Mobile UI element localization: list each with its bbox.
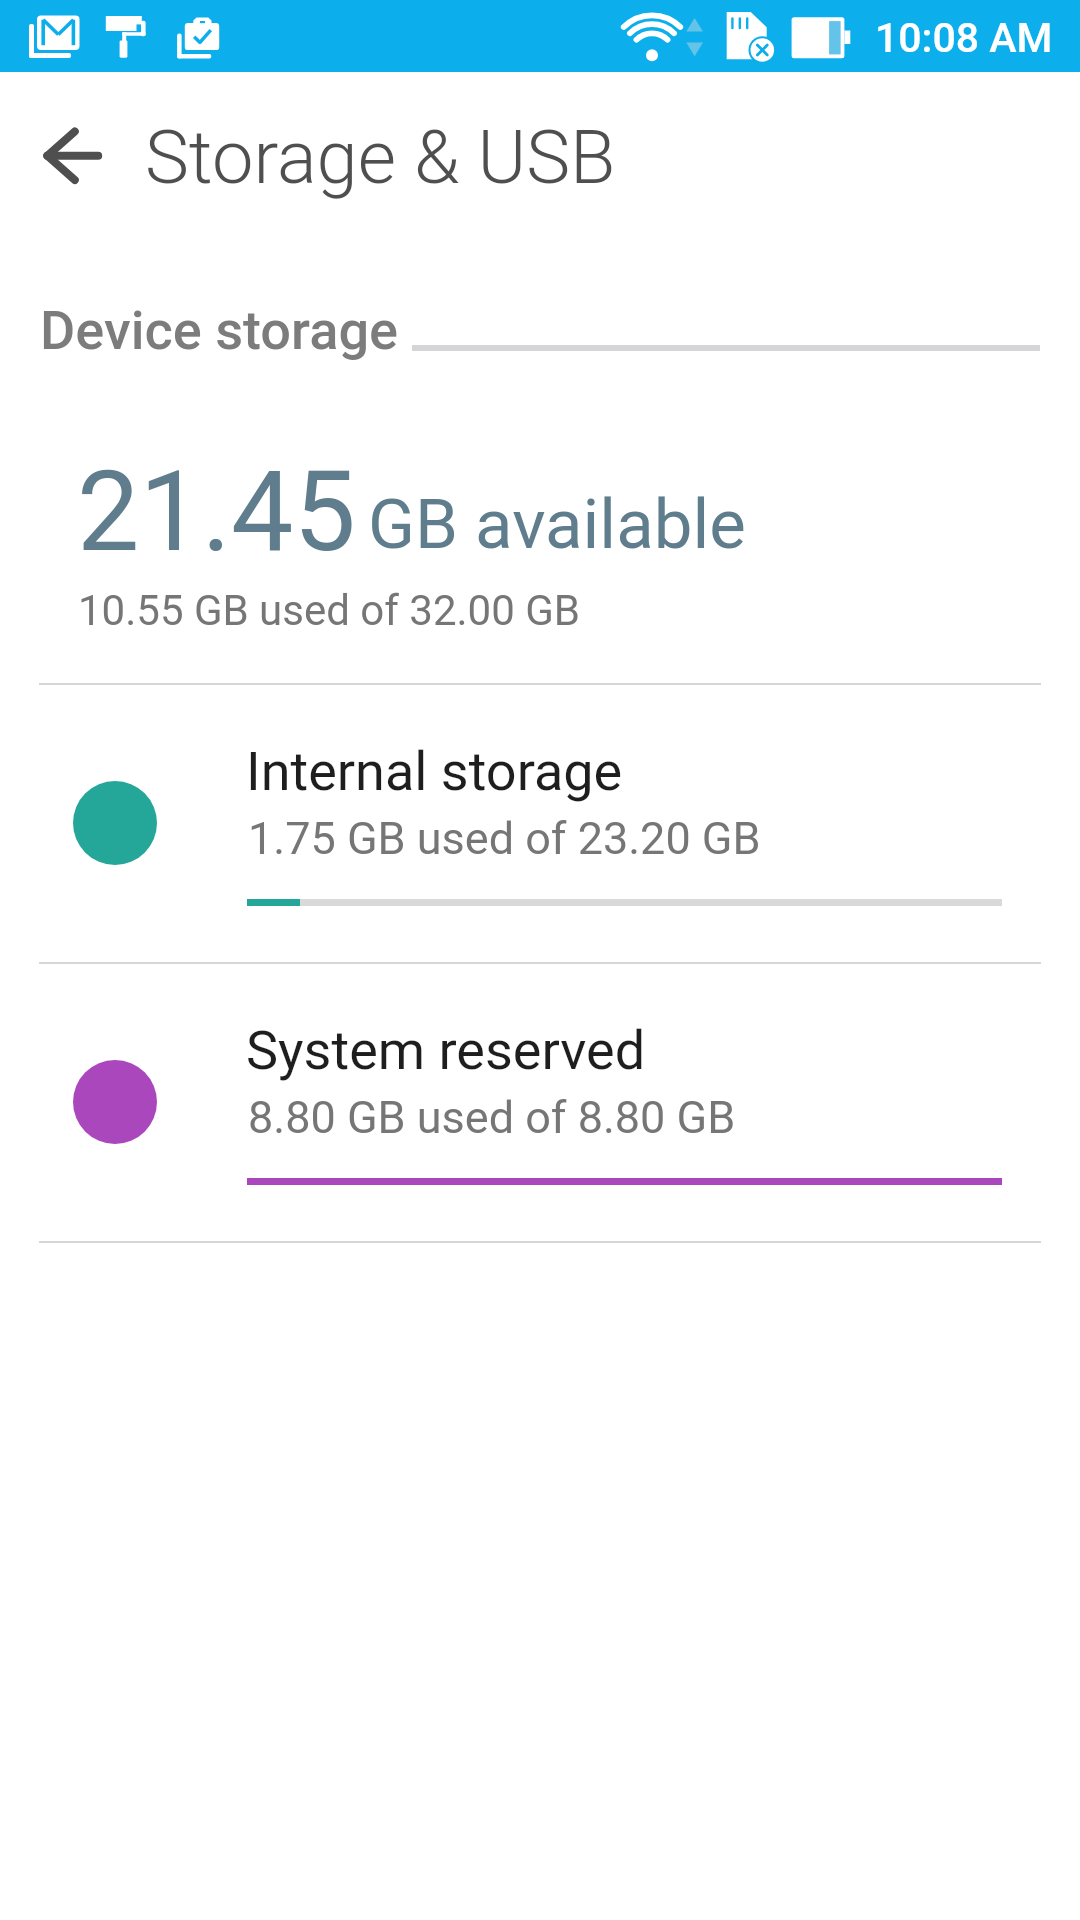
staticText: Storage & USB [145, 114, 616, 201]
staticText: 1.75 GB used of 23.20 GB [248, 812, 761, 865]
staticText: Device storage [40, 299, 399, 362]
staticText: 8.80 GB used of 8.80 GB [248, 1091, 736, 1144]
staticText: GB available [368, 484, 746, 565]
staticText: 10:08 AM [875, 14, 1053, 62]
staticText: 21.45 [77, 447, 356, 577]
button[interactable]: System reserved [0, 962, 1080, 1240]
staticText: System reserved [246, 1019, 646, 1082]
staticText: Internal storage [246, 740, 623, 803]
button[interactable]: Back [26, 108, 122, 204]
staticText: 10.55 GB used of 32.00 GB [78, 586, 580, 635]
button[interactable]: Internal storage [0, 683, 1080, 961]
